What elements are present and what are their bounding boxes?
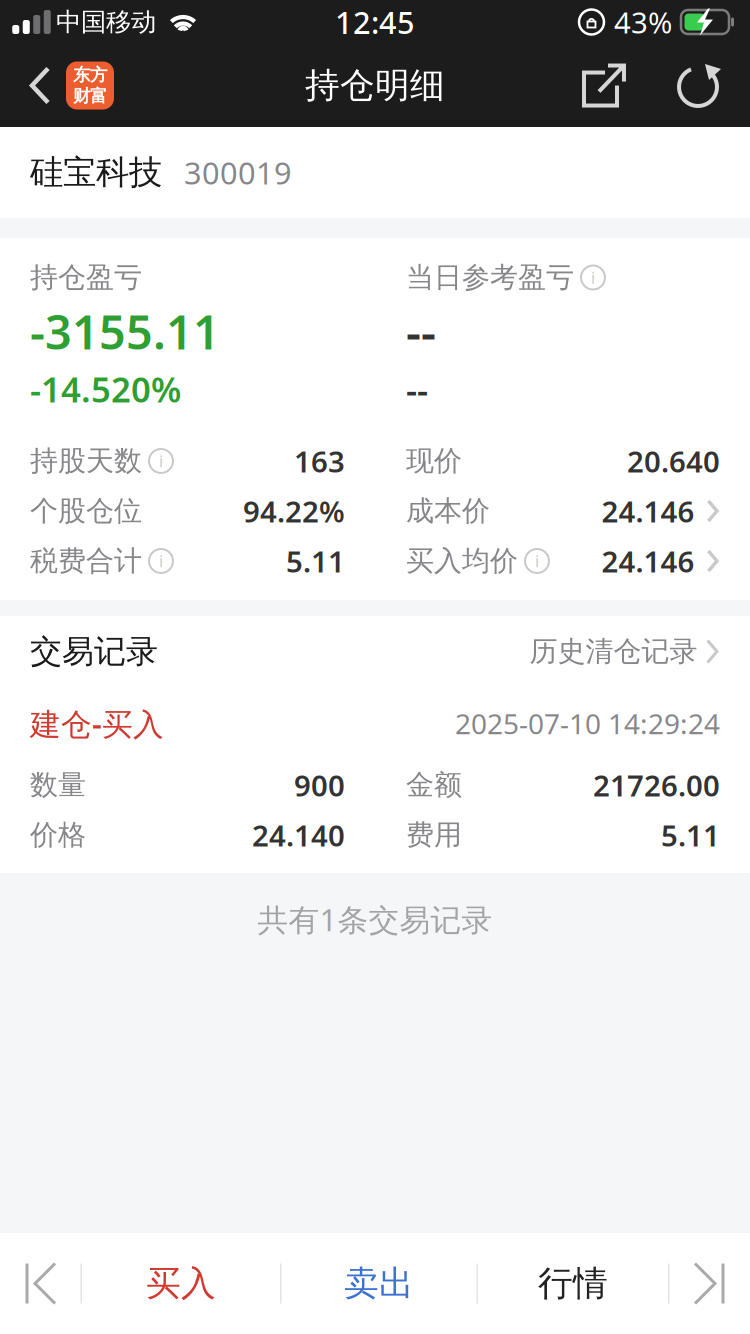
staticText: 43% (614, 2, 672, 41)
staticText: 买入 (146, 1262, 216, 1305)
staticText: -- (406, 366, 428, 412)
staticText: 卖出 (344, 1262, 414, 1305)
button[interactable]: 分享 (547, 44, 661, 127)
staticText: i (159, 450, 163, 472)
staticText: 当日参考盈亏 (406, 260, 574, 295)
staticText: 12:45 (335, 2, 415, 42)
staticText: 财富 (73, 85, 107, 107)
staticText: 5.11 (286, 541, 345, 580)
staticText: -14.520% (30, 366, 181, 412)
staticText: i (591, 267, 595, 288)
staticText: -3155.11 (30, 300, 220, 362)
staticText: 交易记录 (30, 632, 158, 671)
staticText: 300019 (184, 152, 292, 193)
staticText: 行情 (538, 1262, 608, 1305)
staticText: -- (406, 300, 436, 362)
staticText: 东方 (73, 64, 107, 86)
staticText: 金额 (406, 768, 462, 802)
staticText: 费用 (406, 818, 462, 852)
button[interactable]: 卖出 (281, 1233, 476, 1334)
staticText: 硅宝科技 (30, 152, 162, 193)
staticText: 163 (294, 441, 345, 480)
button[interactable]: 刷新 (661, 44, 736, 127)
staticText: 20.640 (627, 441, 720, 480)
staticText: 24.146 (601, 491, 694, 530)
button[interactable]: 历史清仓记录 (530, 634, 720, 669)
staticText: 21726.00 (593, 765, 720, 804)
staticText: 持仓明细 (305, 64, 445, 107)
button[interactable]: 返回 (0, 44, 114, 127)
staticText: 买入均价 (406, 544, 518, 578)
staticText: 现价 (406, 444, 462, 478)
staticText: 建仓-买入 (30, 703, 164, 744)
staticText: 成本价 (406, 494, 490, 528)
staticText: 24.140 (252, 815, 345, 854)
staticText: 中国移动 (56, 6, 156, 37)
staticText: 个股仓位 (30, 494, 142, 528)
staticText: 价格 (30, 818, 86, 852)
staticText: 持股天数 (30, 444, 142, 478)
button[interactable]: 上一只 (1, 1233, 80, 1334)
staticText: 2025-07-10 14:29:24 (455, 705, 720, 742)
staticText: 900 (294, 765, 345, 804)
staticText: i (159, 550, 163, 572)
staticText: 94.22% (243, 491, 345, 530)
button[interactable]: 下一只 (669, 1233, 748, 1334)
staticText: 数量 (30, 768, 86, 802)
button[interactable]: 行情 (478, 1233, 668, 1334)
staticText: i (535, 550, 539, 572)
staticText: 24.146 (601, 541, 694, 580)
staticText: 共有1条交易记录 (257, 899, 492, 940)
staticText: 历史清仓记录 (530, 634, 698, 669)
staticText: 5.11 (661, 815, 720, 854)
button[interactable]: 买入 (82, 1233, 280, 1334)
staticText: 税费合计 (30, 544, 142, 578)
staticText: 持仓盈亏 (30, 260, 142, 295)
